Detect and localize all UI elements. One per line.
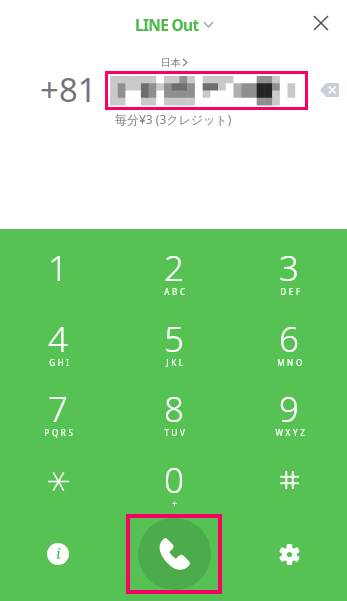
button[interactable]: 9 (253, 379, 325, 439)
staticText: 6 (279, 315, 299, 363)
staticText: DEF (280, 286, 303, 297)
button[interactable]: Close (297, 0, 344, 46)
button[interactable]: 日本 (159, 56, 189, 69)
button[interactable]: Settings (263, 528, 315, 580)
staticText: PQRS (44, 427, 76, 438)
button[interactable]: 5 (138, 309, 210, 369)
staticText: 5 (164, 315, 184, 363)
staticText: LINE Out (135, 14, 199, 35)
button[interactable]: pound (254, 452, 324, 508)
staticText: 3 (279, 244, 299, 292)
button[interactable]: 3 (253, 238, 325, 298)
staticText: 毎分¥3 (3クレジット) (115, 111, 232, 127)
staticText: TUV (164, 427, 188, 438)
staticText: GHI (49, 357, 72, 368)
staticText: MNO (277, 357, 305, 368)
staticText: 9 (279, 385, 299, 433)
button[interactable]: Call (138, 518, 211, 590)
staticText: ABC (164, 286, 188, 297)
staticText: WXYZ (275, 427, 308, 438)
button[interactable]: Backspace (310, 71, 347, 108)
button[interactable]: 7 (22, 379, 94, 439)
staticText: 0 (164, 456, 184, 504)
button[interactable]: 8 (138, 379, 210, 439)
staticText: + (172, 498, 180, 509)
staticText: i (56, 543, 61, 563)
staticText: 2 (164, 244, 184, 292)
button[interactable]: 1 (22, 238, 94, 298)
button[interactable]: 0 (138, 450, 210, 510)
button[interactable]: 2 (138, 238, 210, 298)
staticText: 8 (164, 385, 184, 433)
button[interactable]: 4 (22, 309, 94, 369)
button[interactable]: star (23, 452, 93, 508)
staticText: 7 (48, 385, 68, 433)
staticText: 4 (48, 315, 68, 363)
button[interactable]: Information (32, 528, 84, 580)
staticText: 日本 (161, 56, 181, 69)
button[interactable] (110, 76, 303, 105)
staticText: JKL (166, 357, 186, 368)
button[interactable]: 6 (253, 309, 325, 369)
staticText: +81 (40, 67, 97, 112)
staticText: 1 (48, 244, 68, 292)
